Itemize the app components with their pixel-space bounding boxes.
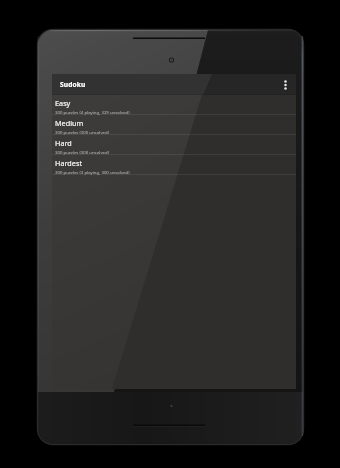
staticText: 300 puzzles (300 unsolved)	[55, 149, 109, 155]
staticText: 300 puzzles (4 playing, 329 unsolved)	[55, 109, 130, 115]
button[interactable]: Medium	[52, 115, 296, 135]
staticText: Hard	[55, 138, 72, 148]
staticText: 300 puzzles (3 playing, 300 unsolved)	[55, 169, 130, 175]
staticText: Medium	[55, 118, 84, 128]
staticText: Sudoku	[60, 80, 86, 89]
button[interactable]: Easy	[52, 95, 296, 115]
button[interactable]: Hard	[52, 135, 296, 155]
staticText: Hardest	[55, 158, 83, 168]
staticText: Easy	[55, 98, 71, 108]
staticText: 300 puzzles (300 unsolved)	[55, 129, 109, 135]
button[interactable]: Hardest	[52, 155, 296, 175]
button[interactable]: More options	[277, 74, 294, 95]
